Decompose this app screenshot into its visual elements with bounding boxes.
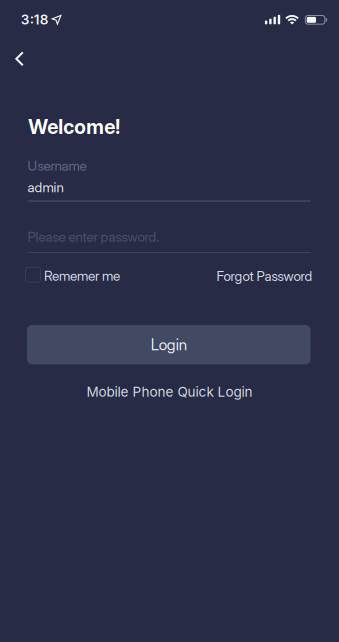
staticText: Please enter password. [27,228,159,245]
staticText: Username [27,157,86,174]
button[interactable]: Login [27,325,310,364]
button[interactable]: Forgot Password [216,268,312,284]
button[interactable]: Rememer me [25,266,120,283]
button[interactable]: Username [27,157,310,201]
staticText: Rememer me [44,268,120,284]
button[interactable]: Mobile Phone Quick Login [86,384,252,400]
staticText: 3:18 [21,11,49,28]
staticText: Welcome! [28,115,120,139]
staticText: Mobile Phone Quick Login [86,384,252,400]
button[interactable]: Please enter password. [27,228,310,253]
staticText: Login [151,335,187,354]
staticText: admin [27,179,63,195]
staticText: Forgot Password [216,268,312,284]
button[interactable]: Back [7,43,33,75]
